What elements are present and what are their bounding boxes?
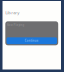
staticText: Continue (25, 39, 39, 42)
button[interactable]: Now Playing (5, 21, 58, 45)
staticText: Now Playing (6, 23, 24, 27)
staticText: Library (5, 10, 19, 15)
